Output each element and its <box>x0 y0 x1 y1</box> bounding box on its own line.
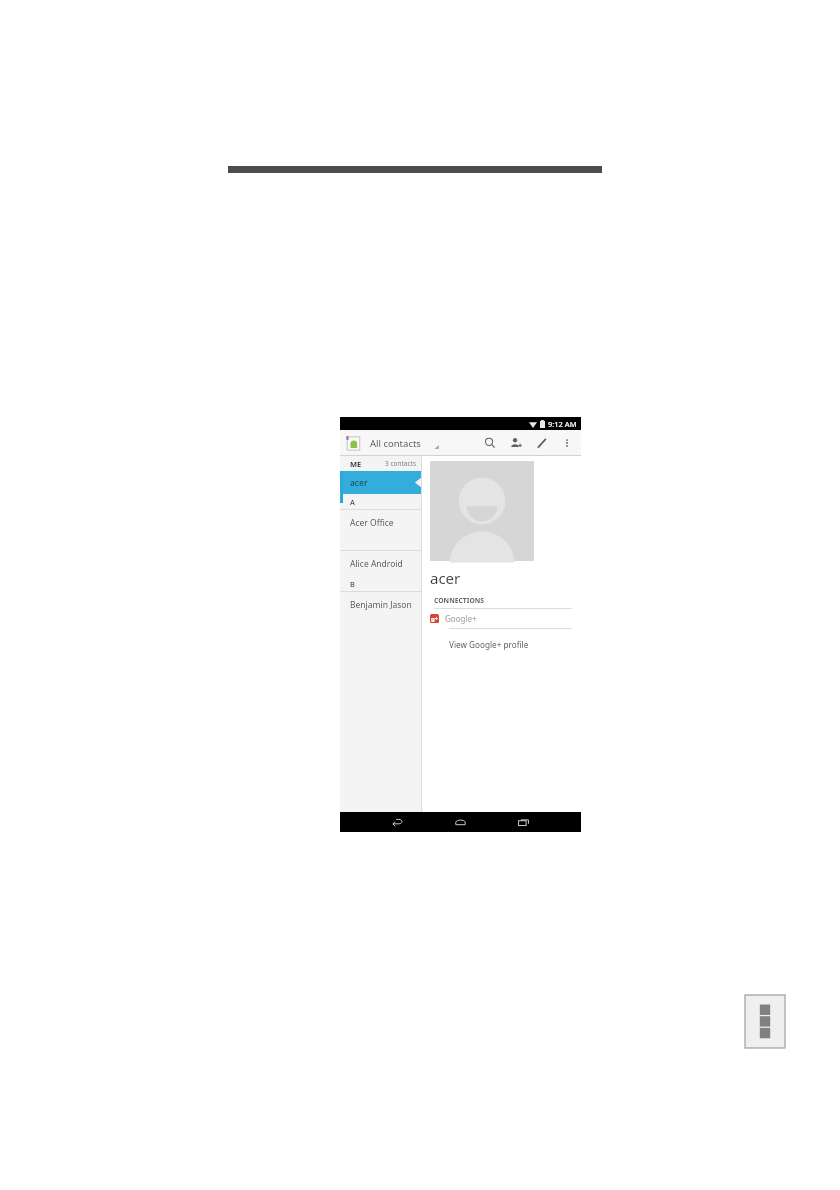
staticText: ME <box>350 459 362 469</box>
button[interactable]: g+ <box>430 609 572 628</box>
staticText: 3 contacts <box>385 459 417 468</box>
button[interactable]: Contact photo <box>430 461 534 561</box>
staticText: Alice Android <box>350 558 403 570</box>
button[interactable]: More options <box>558 434 576 452</box>
button[interactable]: Benjamin Jason <box>340 592 421 617</box>
button[interactable]: Edit <box>533 434 551 452</box>
button[interactable]: acer <box>340 471 421 494</box>
button[interactable]: Home <box>449 814 471 830</box>
staticText: g+ <box>431 615 439 623</box>
button[interactable]: Add contact <box>507 434 525 452</box>
staticText: B <box>350 579 355 589</box>
staticText: 9:12 AM <box>548 419 577 429</box>
staticText: A <box>350 497 355 507</box>
button[interactable]: All contacts <box>370 437 481 450</box>
staticText: CONNECTIONS <box>434 596 485 605</box>
button[interactable]: Alice Android <box>340 551 421 576</box>
button[interactable]: Acer Office <box>340 510 421 535</box>
button[interactable]: Search <box>481 434 499 452</box>
button[interactable]: Recent apps <box>512 814 534 830</box>
staticText: Benjamin Jason <box>350 599 412 611</box>
button[interactable]: View Google+ profile <box>430 636 572 652</box>
staticText: acer <box>350 477 368 489</box>
staticText: Google+ <box>445 613 477 624</box>
staticText: All contacts <box>370 437 421 450</box>
staticText: View Google+ profile <box>449 639 529 650</box>
button[interactable]: Contacts app <box>345 435 361 451</box>
button[interactable]: Back <box>386 814 408 830</box>
staticText: acer <box>430 568 461 588</box>
staticText: Acer Office <box>350 517 394 529</box>
